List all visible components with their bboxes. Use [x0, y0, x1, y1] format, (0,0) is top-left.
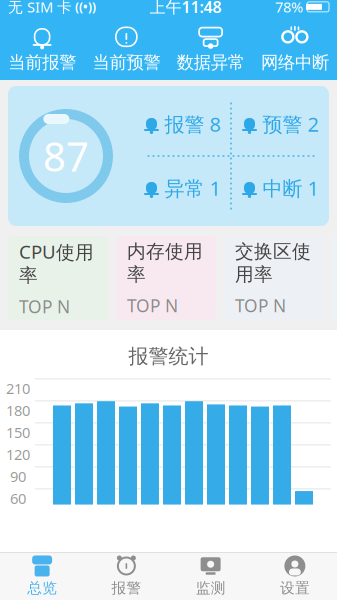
staticText: 监测: [196, 579, 226, 597]
staticText: 87: [43, 129, 89, 182]
staticText: 60: [10, 489, 26, 508]
staticText: 预警 2: [262, 111, 318, 137]
staticText: 总览: [27, 579, 57, 597]
staticText: 内存使用率: [127, 240, 203, 286]
button[interactable]: 报警: [84, 551, 168, 600]
staticText: 异常 1: [164, 175, 220, 201]
button[interactable]: CPU使用率: [8, 236, 108, 320]
staticText: TOP N: [235, 294, 286, 317]
staticText: 报警统计: [128, 344, 208, 369]
staticText: ((•)): [72, 0, 96, 15]
staticText: TOP N: [127, 294, 178, 317]
staticText: 网络中断: [261, 52, 329, 73]
staticText: 90: [10, 467, 26, 486]
staticText: 设置: [280, 579, 310, 597]
staticText: 中断 1: [262, 175, 318, 201]
staticText: 报警: [111, 579, 141, 597]
staticText: 78%: [275, 0, 303, 17]
button[interactable]: 交换区使用率: [224, 236, 324, 320]
button[interactable]: 报警 8: [133, 92, 231, 156]
staticText: CPU使用率: [19, 239, 94, 287]
button[interactable]: 总览: [0, 551, 84, 600]
staticText: 报警 8: [164, 111, 220, 137]
button[interactable]: 当前报警: [0, 21, 84, 77]
button[interactable]: 当前预警: [84, 21, 168, 77]
staticText: TOP N: [19, 295, 70, 318]
staticText: 210: [6, 379, 30, 398]
button[interactable]: 中断 1: [231, 156, 329, 220]
staticText: 当前预警: [92, 52, 160, 73]
staticText: 上午11:48: [149, 0, 221, 17]
staticText: 当前报警: [8, 52, 76, 73]
button[interactable]: 网络中断: [253, 21, 337, 77]
button[interactable]: 设置: [253, 551, 337, 600]
staticText: 交换区使用率: [235, 240, 311, 286]
button[interactable]: 内存使用率: [116, 236, 216, 320]
button[interactable]: 监测: [168, 551, 253, 600]
button[interactable]: 预警 2: [231, 92, 329, 156]
staticText: 180: [6, 401, 30, 420]
button[interactable]: 异常 1: [133, 156, 231, 220]
staticText: 120: [6, 445, 30, 464]
staticText: 150: [6, 423, 30, 442]
staticText: 无 SIM 卡: [8, 0, 72, 17]
staticText: 数据异常: [177, 52, 245, 73]
button[interactable]: 数据异常: [168, 21, 253, 77]
